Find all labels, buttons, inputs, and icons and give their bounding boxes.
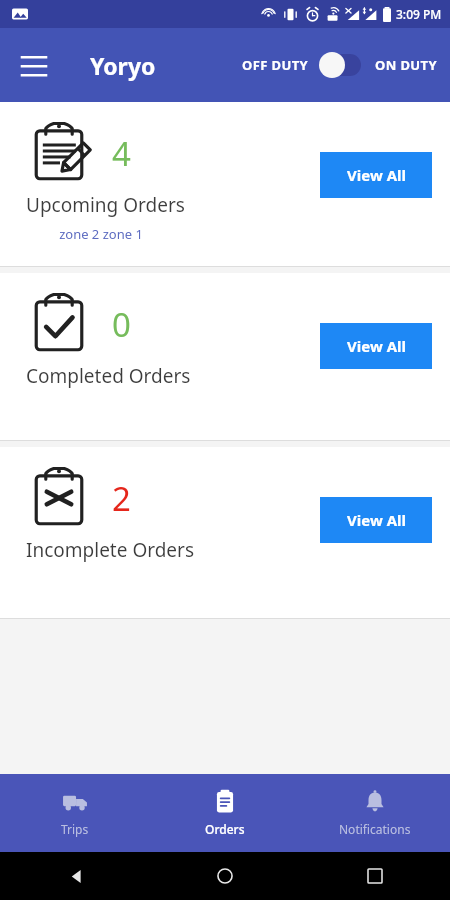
staticText: Trips <box>61 821 89 837</box>
button[interactable]: View All <box>320 152 432 198</box>
staticText: Orders <box>205 821 245 837</box>
staticText: ON DUTY <box>375 56 438 74</box>
staticText: 0 <box>112 302 131 347</box>
button[interactable]: Notifications <box>300 774 450 852</box>
staticText: 2 <box>112 476 131 521</box>
button[interactable]: View All <box>320 497 432 543</box>
staticText: 4 <box>112 131 131 176</box>
staticText: zone 2 zone 1 <box>59 225 143 243</box>
button[interactable]: 2 <box>0 447 450 619</box>
staticText: View All <box>347 165 406 185</box>
staticText: Notifications <box>339 821 411 837</box>
button[interactable]: Orders <box>150 774 300 852</box>
staticText: 3:09 PM <box>396 6 442 22</box>
button[interactable]: Trips <box>0 774 150 852</box>
button[interactable]: 0 <box>0 273 450 441</box>
button[interactable]: Duty status toggle <box>319 47 367 83</box>
staticText: Upcoming Orders <box>26 192 185 218</box>
staticText: View All <box>347 510 406 530</box>
staticText: Completed Orders <box>26 363 191 389</box>
staticText: Yoryo <box>90 50 156 81</box>
button[interactable]: View All <box>320 323 432 369</box>
staticText: OFF DUTY <box>242 56 309 74</box>
staticText: View All <box>347 336 406 356</box>
button[interactable]: Open navigation menu <box>10 41 58 89</box>
staticText: Incomplete Orders <box>26 537 195 563</box>
button[interactable]: 4 <box>0 102 450 267</box>
